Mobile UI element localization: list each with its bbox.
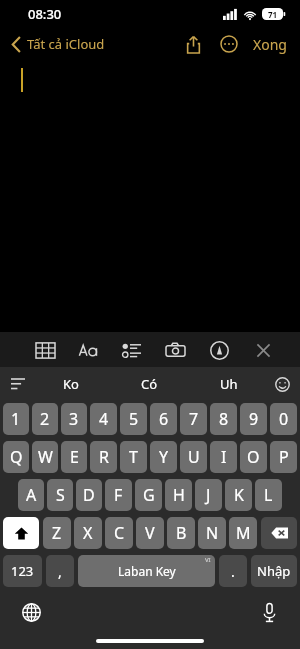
button[interactable]: X bbox=[74, 517, 102, 549]
button[interactable]: T bbox=[120, 441, 147, 473]
button[interactable]: R bbox=[90, 441, 117, 473]
button[interactable]: 8 bbox=[210, 403, 237, 435]
button[interactable]: Checklist bbox=[116, 335, 146, 365]
staticText: S bbox=[56, 484, 65, 506]
button[interactable]: Z bbox=[43, 517, 71, 549]
button[interactable]: 123 bbox=[3, 555, 42, 587]
button[interactable]: 3 bbox=[61, 403, 87, 435]
button[interactable]: 5 bbox=[120, 403, 147, 435]
button[interactable]: L bbox=[255, 479, 282, 511]
button[interactable]: P bbox=[270, 441, 297, 473]
staticText: Xong bbox=[253, 35, 287, 54]
staticText: 6 bbox=[159, 408, 169, 430]
button[interactable]: Text format bbox=[73, 335, 103, 365]
button[interactable]: O bbox=[240, 441, 267, 473]
staticText: 71 bbox=[268, 9, 278, 20]
button[interactable]: W bbox=[32, 441, 58, 473]
button[interactable]: K bbox=[225, 479, 252, 511]
staticText: 3 bbox=[69, 408, 79, 430]
staticText: 123 bbox=[11, 562, 34, 580]
button[interactable]: H bbox=[165, 479, 192, 511]
staticText: X bbox=[83, 522, 93, 544]
button[interactable]: Share bbox=[178, 29, 208, 59]
button[interactable]: Emoji bbox=[268, 370, 296, 398]
staticText: C bbox=[114, 522, 125, 544]
staticText: R bbox=[99, 446, 109, 468]
button[interactable]: F bbox=[105, 479, 132, 511]
button[interactable]: Q bbox=[3, 441, 29, 473]
staticText: O bbox=[247, 446, 260, 468]
staticText: Ko bbox=[63, 375, 79, 393]
button[interactable]: More options bbox=[214, 29, 244, 59]
staticText: G bbox=[143, 484, 155, 506]
staticText: K bbox=[234, 484, 244, 506]
staticText: J bbox=[206, 484, 211, 506]
staticText: 9 bbox=[249, 408, 259, 430]
button[interactable]: Backspace bbox=[261, 517, 297, 549]
staticText: Tất cả iCloud bbox=[27, 35, 105, 53]
button[interactable]: D bbox=[76, 479, 102, 511]
staticText: T bbox=[129, 446, 138, 468]
staticText: U bbox=[188, 446, 200, 468]
button[interactable]: 4 bbox=[90, 403, 117, 435]
button[interactable]: Y bbox=[150, 441, 177, 473]
button[interactable]: V bbox=[136, 517, 164, 549]
button[interactable]: 7 bbox=[180, 403, 207, 435]
button[interactable]: , bbox=[46, 555, 74, 587]
staticText: Có bbox=[141, 375, 158, 393]
staticText: Y bbox=[159, 446, 169, 468]
staticText: 7 bbox=[189, 408, 199, 430]
staticText: 5 bbox=[129, 408, 139, 430]
button[interactable]: Table bbox=[30, 335, 60, 365]
button[interactable]: A bbox=[18, 479, 44, 511]
staticText: B bbox=[176, 522, 187, 544]
button[interactable]: M bbox=[229, 517, 257, 549]
staticText: A bbox=[26, 484, 37, 506]
button[interactable]: J bbox=[195, 479, 222, 511]
staticText: 8 bbox=[219, 408, 229, 430]
button[interactable]: E bbox=[61, 441, 87, 473]
staticText: Q bbox=[10, 446, 23, 468]
staticText: 2 bbox=[40, 408, 50, 430]
staticText: F bbox=[114, 484, 123, 506]
button[interactable]: Tất cả iCloud bbox=[8, 31, 109, 57]
staticText: D bbox=[83, 484, 95, 506]
button[interactable]: S bbox=[47, 479, 73, 511]
button[interactable]: G bbox=[135, 479, 162, 511]
button[interactable]: Markup bbox=[204, 335, 234, 365]
button[interactable]: Có bbox=[110, 367, 189, 400]
button[interactable]: Ko bbox=[32, 367, 110, 400]
staticText: M bbox=[236, 522, 251, 544]
button[interactable]: Dictation bbox=[256, 599, 282, 625]
button[interactable]: Change keyboard bbox=[18, 599, 44, 625]
button[interactable]: Menu bbox=[4, 370, 32, 398]
button[interactable]: . bbox=[219, 555, 247, 587]
button[interactable]: I bbox=[210, 441, 237, 473]
staticText: , bbox=[58, 562, 62, 581]
staticText: 0 bbox=[279, 408, 289, 430]
button[interactable]: Nhập bbox=[251, 555, 297, 587]
button[interactable]: 0 bbox=[270, 403, 297, 435]
button[interactable]: Close bbox=[248, 335, 278, 365]
button[interactable]: 6 bbox=[150, 403, 177, 435]
button[interactable]: B bbox=[167, 517, 195, 549]
button[interactable]: 2 bbox=[32, 403, 58, 435]
staticText: W bbox=[38, 446, 53, 468]
staticText: VI bbox=[205, 556, 211, 564]
button[interactable]: U bbox=[180, 441, 207, 473]
staticText: 1 bbox=[11, 408, 21, 430]
staticText: P bbox=[279, 446, 289, 468]
staticText: Laban Key bbox=[118, 563, 176, 579]
button[interactable]: 1 bbox=[3, 403, 29, 435]
button[interactable]: N bbox=[198, 517, 226, 549]
button[interactable]: Uh bbox=[189, 367, 268, 400]
button[interactable]: Shift bbox=[3, 517, 39, 549]
button[interactable]: Xong bbox=[248, 30, 292, 59]
button[interactable]: C bbox=[105, 517, 133, 549]
staticText: . bbox=[231, 562, 235, 581]
button[interactable]: Laban Key bbox=[78, 555, 215, 587]
button[interactable]: 9 bbox=[240, 403, 267, 435]
staticText: I bbox=[221, 446, 227, 468]
button[interactable]: Camera bbox=[160, 335, 190, 365]
staticText: 08:30 bbox=[28, 5, 62, 23]
